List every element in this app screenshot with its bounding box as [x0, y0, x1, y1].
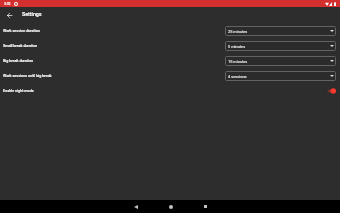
- staticText: 25 minutes: [228, 29, 248, 34]
- button[interactable]: Recent apps: [199, 200, 212, 213]
- staticText: 15 minutes: [228, 59, 248, 64]
- staticText: Big break duration: [3, 59, 225, 63]
- button[interactable]: Home: [164, 200, 177, 213]
- button[interactable]: 4 sessions: [225, 71, 336, 81]
- staticText: 4 sessions: [228, 74, 247, 79]
- staticText: 5 minutes: [228, 44, 246, 49]
- button[interactable]: 15 minutes: [225, 56, 336, 66]
- staticText: 3:32: [4, 2, 11, 6]
- staticText: Settings: [22, 11, 42, 17]
- staticText: Work sessions until big break: [3, 74, 225, 78]
- staticText: Work session duration: [3, 29, 225, 33]
- button[interactable]: Back: [0, 7, 19, 23]
- button[interactable]: Enable night mode: [321, 86, 336, 96]
- button[interactable]: 5 minutes: [225, 41, 336, 51]
- button[interactable]: 25 minutes: [225, 26, 336, 36]
- staticText: Small break duration: [3, 44, 225, 48]
- button[interactable]: Back: [129, 200, 142, 213]
- staticText: Enable night mode: [3, 89, 225, 93]
